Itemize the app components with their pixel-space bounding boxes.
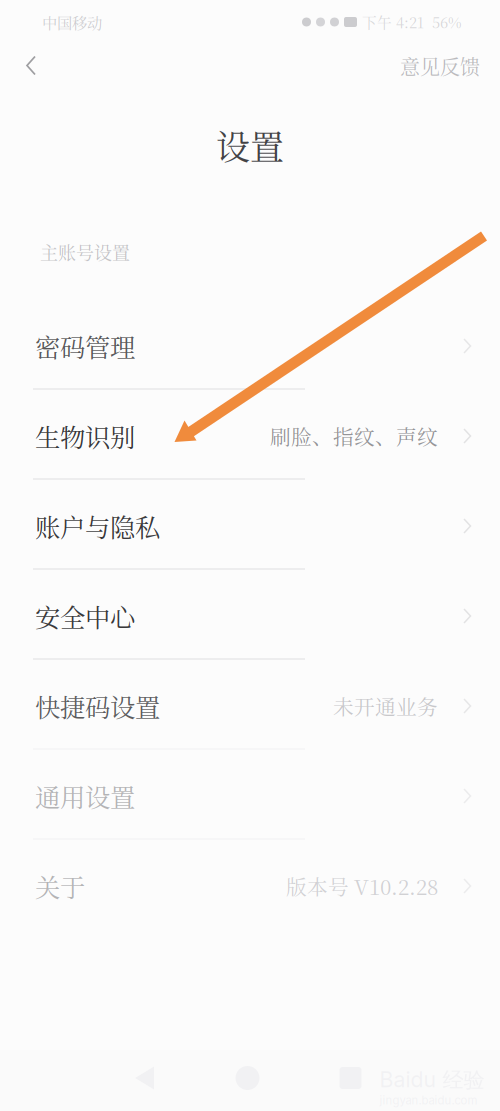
staticText: 意见反馈 xyxy=(400,52,480,80)
staticText: Baidu 经验 xyxy=(379,1067,484,1094)
staticText: 账户与隐私 xyxy=(35,508,160,544)
button[interactable]: 关于 xyxy=(0,841,500,931)
staticText: 通用设置 xyxy=(35,778,135,814)
button[interactable]: 生物识别 xyxy=(0,391,500,481)
staticText: 设置 xyxy=(216,121,284,169)
staticText: 安全中心 xyxy=(35,598,135,634)
staticText: 下午 4:21 56% xyxy=(362,11,462,33)
button[interactable]: 意见反馈 xyxy=(390,42,490,90)
button[interactable]: 安全中心 xyxy=(0,571,500,661)
staticText: 未开通业务 xyxy=(333,691,438,721)
button[interactable]: 快捷码设置 xyxy=(0,661,500,751)
button[interactable]: 返回 xyxy=(12,42,51,89)
staticText: 主账号设置 xyxy=(40,239,130,265)
button[interactable]: 密码管理 xyxy=(0,301,500,391)
staticText: 快捷码设置 xyxy=(35,688,160,724)
staticText: 中国移动 xyxy=(42,11,102,33)
button[interactable]: 账户与隐私 xyxy=(0,481,500,571)
staticText: 关于 xyxy=(35,868,85,904)
staticText: 版本号 V10.2.28 xyxy=(286,871,438,901)
staticText: 刷脸、指纹、声纹 xyxy=(270,421,438,451)
staticText: 密码管理 xyxy=(35,328,135,364)
button[interactable]: 通用设置 xyxy=(0,751,500,841)
staticText: 生物识别 xyxy=(35,418,135,454)
